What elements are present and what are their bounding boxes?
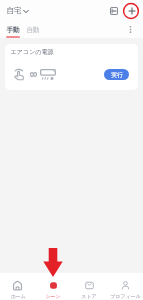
staticText: ホーム (10, 293, 26, 299)
button[interactable]: シーン (35, 273, 71, 300)
button[interactable]: More options (122, 24, 138, 35)
staticText: 自宅 (6, 6, 22, 16)
button[interactable]: Saved scenes (105, 2, 123, 20)
staticText: シーン (45, 293, 61, 299)
button[interactable]: エアコンの電源 (5, 44, 138, 90)
staticText: プロフィール (110, 293, 141, 299)
button[interactable]: ホーム (0, 273, 35, 300)
button[interactable]: ストア (71, 273, 107, 300)
staticText: ストア (81, 293, 97, 299)
staticText: 手動 (6, 26, 20, 34)
button[interactable]: 自宅 (6, 6, 29, 16)
staticText: 実行 (111, 71, 123, 78)
button[interactable]: Add scene (123, 2, 141, 20)
button[interactable]: 自動 (26, 26, 40, 34)
staticText: 自動 (26, 26, 40, 34)
button[interactable]: 実行 (104, 69, 129, 80)
button[interactable]: プロフィール (107, 273, 143, 300)
button[interactable]: 手動 (6, 26, 20, 34)
staticText: エアコンの電源 (10, 48, 54, 56)
